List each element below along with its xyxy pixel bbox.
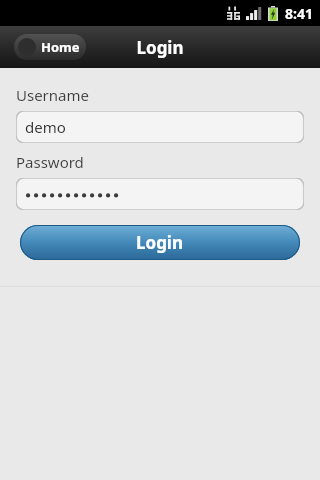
staticText: Password: [16, 152, 84, 172]
staticText: 8:41: [285, 4, 313, 23]
button[interactable]: Login: [20, 225, 300, 260]
staticText: Home: [41, 38, 80, 56]
staticText: Username: [16, 85, 89, 105]
button[interactable]: Home: [14, 34, 86, 60]
staticText: demo: [25, 117, 66, 137]
button[interactable]: [16, 178, 304, 210]
staticText: Login: [136, 231, 184, 254]
staticText: Login: [136, 36, 184, 59]
button[interactable]: demo: [16, 111, 304, 143]
